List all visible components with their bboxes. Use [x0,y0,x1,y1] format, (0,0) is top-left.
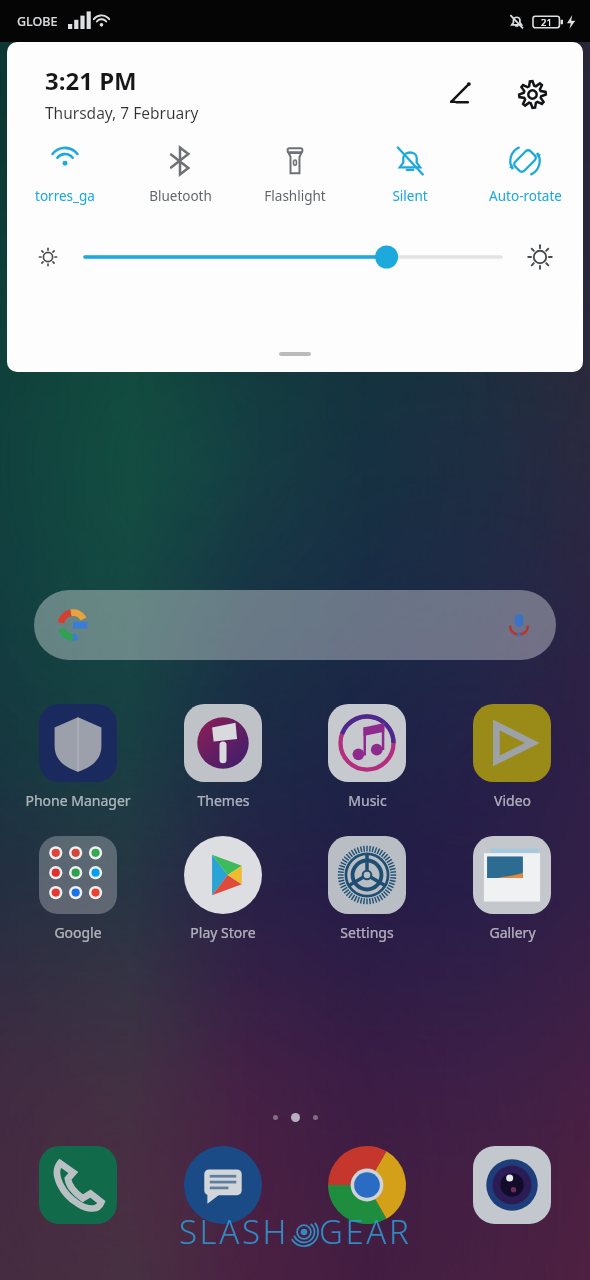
staticText: Themes [197,791,250,810]
button[interactable]: torres_ga [11,141,119,209]
button[interactable]: Auto-rotate [471,141,579,209]
button[interactable]: Silent [356,141,464,209]
staticText: Google [54,923,102,942]
button[interactable]: Music [297,704,437,810]
button[interactable] [34,590,556,660]
staticText: Phone Manager [25,791,131,810]
staticText: Gallery [489,923,536,942]
button[interactable]: Gallery [442,836,582,942]
staticText: Video [494,791,531,810]
staticText: GEAR [319,1209,412,1254]
button[interactable]: Camera [442,1146,582,1224]
button[interactable]: Settings [509,71,555,117]
button[interactable]: Bluetooth [126,141,234,209]
button[interactable]: Video [442,704,582,810]
button[interactable]: Chrome [297,1146,437,1224]
button[interactable]: Phone Manager [8,704,148,810]
staticText: 3:21 PM [45,64,137,97]
staticText: SLASH [179,1209,289,1254]
button[interactable]: Themes [153,704,293,810]
button[interactable]: Messages [153,1146,293,1224]
staticText: Play Store [190,923,256,942]
staticText: GLOBE [17,13,58,30]
staticText: Auto-rotate [489,187,562,205]
button[interactable]: Settings [297,836,437,942]
staticText: Thursday, 7 February [45,102,199,123]
staticText: Flashlight [264,187,326,205]
staticText: torres_ga [35,187,95,205]
button[interactable]: Edit quick settings [437,71,483,117]
button[interactable]: Flashlight [241,141,349,209]
button[interactable]: Play Store [153,836,293,942]
button[interactable]: Brightness [85,242,501,272]
staticText: Music [348,791,387,810]
button[interactable]: Expand panel [279,352,311,356]
staticText: 21 [541,16,552,29]
button[interactable]: Phone [8,1146,148,1224]
button[interactable]: Google [8,836,148,942]
staticText: Silent [392,187,428,205]
staticText: Bluetooth [149,187,212,205]
staticText: Settings [340,923,394,942]
